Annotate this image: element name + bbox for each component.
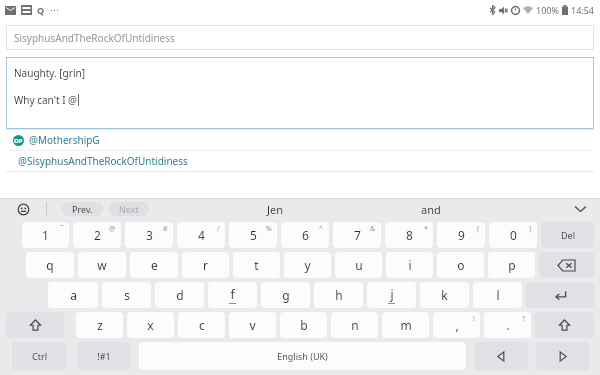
staticText: m	[400, 317, 412, 333]
button[interactable]: Enter	[526, 282, 594, 308]
button[interactable]: z	[76, 312, 123, 338]
button[interactable]: 1	[22, 222, 69, 248]
button[interactable]: @SisyphusAndTheRockOfUntidiness	[6, 151, 594, 171]
staticText: j	[390, 286, 394, 302]
button[interactable]: Ctrl	[12, 342, 67, 370]
staticText: OP	[14, 137, 23, 145]
button[interactable]: Hide keyboard	[560, 198, 600, 220]
button[interactable]: h	[314, 282, 363, 308]
staticText: !#1	[97, 350, 111, 362]
staticText: p	[508, 257, 516, 273]
staticText: z	[97, 317, 103, 333]
button[interactable]: .	[484, 312, 531, 338]
staticText: t	[254, 257, 259, 273]
button[interactable]: w	[78, 252, 126, 278]
staticText: n	[351, 317, 359, 333]
button[interactable]: b	[280, 312, 327, 338]
button[interactable]: Emoji	[0, 198, 46, 220]
staticText: o	[457, 257, 465, 273]
staticText: 3	[146, 227, 153, 243]
button[interactable]: Backspace	[539, 252, 594, 278]
button[interactable]: 0	[489, 222, 537, 248]
staticText: 4	[198, 227, 205, 243]
button[interactable]: m	[382, 312, 429, 338]
button[interactable]: s	[102, 282, 151, 308]
button[interactable]: l	[473, 282, 522, 308]
button[interactable]: !#1	[77, 342, 131, 370]
staticText: a	[70, 287, 77, 303]
button[interactable]: Jen	[267, 202, 284, 217]
button[interactable]: 6	[281, 222, 329, 248]
button[interactable]: v	[229, 312, 276, 338]
staticText: *	[424, 224, 428, 234]
staticText: @SisyphusAndTheRockOfUntidiness	[18, 154, 188, 168]
staticText: 1	[42, 227, 49, 243]
staticText: 5	[250, 227, 257, 243]
staticText: h	[335, 287, 343, 303]
button[interactable]: 4	[177, 222, 225, 248]
button[interactable]: x	[127, 312, 174, 338]
staticText: ^	[319, 224, 324, 234]
staticText: 6	[302, 227, 309, 243]
staticText: w	[97, 257, 107, 273]
staticText: f	[230, 286, 235, 302]
button[interactable]: k	[420, 282, 469, 308]
staticText: ?	[522, 314, 526, 324]
staticText: Del	[561, 229, 575, 241]
button[interactable]: r	[182, 252, 229, 278]
button[interactable]: c	[178, 312, 225, 338]
staticText: !	[473, 314, 475, 324]
staticText: r	[203, 257, 208, 273]
button[interactable]: Del	[541, 222, 594, 248]
staticText: #	[163, 224, 168, 234]
button[interactable]: 5	[229, 222, 277, 248]
button[interactable]: e	[130, 252, 178, 278]
staticText: SisyphusAndTheRockOfUntidiness	[14, 31, 175, 45]
button[interactable]: 9	[437, 222, 485, 248]
button[interactable]: 7	[333, 222, 381, 248]
staticText: b	[300, 317, 308, 333]
staticText: %	[266, 224, 272, 234]
button[interactable]: g	[261, 282, 310, 308]
staticText: Next	[119, 203, 139, 215]
button[interactable]: Cursor left	[474, 342, 528, 370]
button[interactable]: t	[233, 252, 280, 278]
button[interactable]: Cursor right	[536, 342, 590, 370]
button[interactable]: and	[421, 202, 441, 217]
staticText: 7	[354, 227, 361, 243]
button[interactable]: OP	[6, 130, 594, 150]
staticText: 9	[458, 227, 465, 243]
button[interactable]: y	[284, 252, 331, 278]
staticText: &	[370, 224, 376, 234]
button[interactable]: n	[331, 312, 378, 338]
staticText: ¯	[60, 224, 64, 234]
button[interactable]: f	[208, 282, 257, 308]
staticText: (	[477, 224, 480, 234]
button[interactable]: o	[437, 252, 484, 278]
button[interactable]: English (UK)	[139, 342, 466, 370]
staticText: @MothershipG	[29, 133, 100, 147]
button[interactable]: d	[155, 282, 204, 308]
staticText: ⋯	[50, 5, 59, 15]
button[interactable]: ,	[433, 312, 480, 338]
button[interactable]: u	[335, 252, 382, 278]
button[interactable]: j	[367, 282, 416, 308]
button[interactable]: 8	[385, 222, 433, 248]
button[interactable]: 2	[73, 222, 121, 248]
button[interactable]: SisyphusAndTheRockOfUntidiness	[6, 25, 594, 50]
staticText: e	[151, 257, 158, 273]
button[interactable]: Shift	[535, 312, 594, 338]
staticText: 2	[94, 227, 101, 243]
staticText: ,	[455, 317, 459, 333]
staticText: .	[506, 317, 510, 333]
button[interactable]: Prev.	[62, 202, 103, 216]
button[interactable]: 3	[125, 222, 173, 248]
button[interactable]: Shift	[6, 312, 64, 338]
button[interactable]: a	[48, 282, 98, 308]
button[interactable]: Naughty. [grin]	[6, 57, 594, 129]
button[interactable]: p	[488, 252, 535, 278]
staticText: y	[304, 257, 311, 273]
button[interactable]: i	[386, 252, 433, 278]
button[interactable]: Next	[109, 202, 149, 216]
button[interactable]: q	[26, 252, 74, 278]
